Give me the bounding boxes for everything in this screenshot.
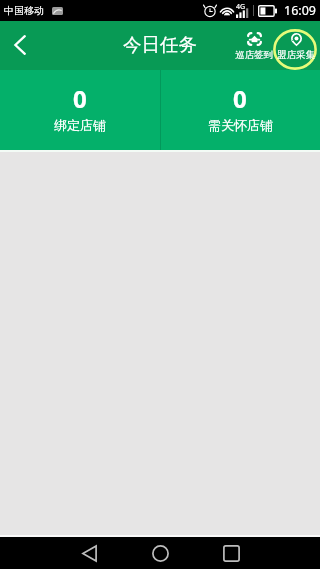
- button[interactable]: 0: [0, 70, 160, 150]
- button[interactable]: 0: [160, 70, 320, 150]
- button[interactable]: 盟店采集: [274, 22, 317, 71]
- staticText: 中国移动: [4, 4, 44, 17]
- button[interactable]: Back: [59, 537, 119, 569]
- staticText: 0: [73, 82, 87, 115]
- staticText: 4G: [236, 2, 246, 12]
- staticText: 巡店签到: [235, 49, 273, 61]
- button[interactable]: Back: [0, 21, 40, 70]
- button[interactable]: Recents: [201, 537, 261, 569]
- staticText: 0: [233, 82, 247, 115]
- staticText: 绑定店铺: [54, 117, 106, 133]
- button[interactable]: 巡店签到: [232, 22, 275, 71]
- staticText: 16:09: [284, 2, 316, 19]
- button[interactable]: Home: [130, 537, 190, 569]
- staticText: 盟店采集: [277, 49, 315, 61]
- staticText: 需关怀店铺: [208, 117, 273, 133]
- staticText: 今日任务: [123, 33, 197, 56]
